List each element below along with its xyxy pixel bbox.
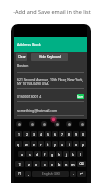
button[interactable]: v (49, 161, 55, 167)
staticText: i (69, 142, 70, 147)
staticText: , (28, 172, 29, 176)
staticText: f (44, 152, 46, 157)
button[interactable]: 6 (52, 131, 58, 137)
staticText: q (17, 142, 20, 147)
staticText: Hide Keyboard (39, 55, 61, 59)
button[interactable]: q (15, 141, 22, 147)
button[interactable]: i (66, 141, 72, 147)
staticText: h (58, 152, 61, 157)
button[interactable]: 1 (15, 131, 22, 137)
staticText: 5 (47, 132, 49, 137)
staticText: p (82, 142, 85, 147)
staticText: 4 (40, 132, 42, 137)
button[interactable]: f (42, 151, 48, 157)
button[interactable]: o (73, 141, 79, 147)
button[interactable]: Hide Keyboard (31, 53, 68, 61)
button[interactable]: , (25, 171, 31, 177)
staticText: y (54, 142, 56, 147)
button[interactable]: Address Book (14, 37, 87, 52)
staticText: n (65, 162, 68, 167)
staticText: 7 (61, 132, 63, 137)
staticText: ⌫ (79, 162, 84, 166)
button[interactable]: l (77, 151, 83, 157)
staticText: ⇧ (18, 162, 22, 167)
staticText: l (80, 152, 81, 157)
staticText: Boston (17, 63, 29, 68)
button[interactable]: Clear (16, 53, 27, 61)
button[interactable]: 8 (66, 131, 72, 137)
button[interactable]: English (UK) (32, 171, 69, 177)
button[interactable]: p (80, 141, 86, 147)
staticText: r (40, 142, 42, 147)
button[interactable]: 2 (23, 131, 30, 137)
button[interactable]: 5 (45, 131, 51, 137)
staticText: a (21, 152, 23, 157)
button[interactable]: Keyboard tool (29, 121, 35, 127)
staticText: x (35, 162, 38, 167)
button[interactable]: u (59, 141, 65, 147)
button[interactable]: n (63, 161, 69, 167)
staticText: o (75, 142, 78, 147)
button[interactable]: . (70, 171, 76, 177)
staticText: b (58, 162, 61, 167)
button[interactable]: 4 (38, 131, 44, 137)
button[interactable]: b (56, 161, 62, 167)
staticText: k (72, 152, 74, 157)
button[interactable]: Enter (77, 171, 86, 177)
staticText: c (44, 162, 46, 167)
staticText: ?1 (18, 172, 22, 176)
button[interactable]: y (52, 141, 58, 147)
button[interactable]: 3 (31, 131, 37, 137)
staticText: Address Book (17, 42, 41, 47)
button[interactable]: z (25, 161, 32, 167)
button[interactable]: Keyboard tool (66, 121, 72, 127)
staticText: w (25, 142, 28, 147)
staticText: 6 (54, 132, 56, 137)
button[interactable]: 9 (73, 131, 79, 137)
staticText: Save (77, 95, 84, 99)
button[interactable]: s (26, 151, 33, 157)
button[interactable]: t (45, 141, 51, 147)
staticText: . (73, 172, 74, 176)
button[interactable]: x (33, 161, 40, 167)
staticText: m (71, 162, 75, 167)
button[interactable]: g (49, 151, 55, 157)
button[interactable]: a (18, 151, 25, 157)
staticText: g (51, 152, 54, 157)
button[interactable]: ?1 (15, 171, 24, 177)
button[interactable]: Keyboard tool (16, 121, 22, 127)
button[interactable]: r (38, 141, 44, 147)
button[interactable]: Keyboard tool (79, 121, 85, 127)
button[interactable]: 7 (59, 131, 65, 137)
button[interactable]: Keyboard tool (54, 121, 60, 127)
button[interactable]: e (31, 141, 37, 147)
staticText: t (47, 142, 49, 147)
button[interactable]: m (70, 161, 76, 167)
staticText: Clear (18, 55, 26, 59)
staticText: 01600013001 4 (17, 94, 42, 99)
button[interactable]: w (23, 141, 30, 147)
button[interactable]: j (63, 151, 69, 157)
staticText: 621 Second Avenue, 10th Floor, New York,… (17, 77, 84, 86)
staticText: 8 (68, 132, 70, 137)
button[interactable]: Keyboard tool (41, 121, 47, 127)
button[interactable]: d (34, 151, 41, 157)
button[interactable]: h (56, 151, 62, 157)
button[interactable]: Backspace (77, 161, 86, 167)
staticText: j (66, 152, 67, 157)
staticText: z (28, 162, 30, 167)
staticText: English (UK) (42, 172, 60, 176)
staticText: 0 (82, 132, 84, 137)
staticText: e (33, 142, 35, 147)
button[interactable]: Shift (15, 161, 24, 167)
staticText: -Add and Save email in the list (13, 8, 91, 15)
staticText: s (29, 152, 31, 157)
button[interactable]: c (41, 161, 48, 167)
staticText: 3 (33, 132, 35, 137)
button[interactable]: 0 (80, 131, 86, 137)
staticText: 2 (26, 132, 28, 137)
button[interactable]: Save (77, 94, 84, 99)
button[interactable]: k (70, 151, 76, 157)
staticText: v (51, 162, 53, 167)
staticText: 1 (18, 132, 20, 137)
